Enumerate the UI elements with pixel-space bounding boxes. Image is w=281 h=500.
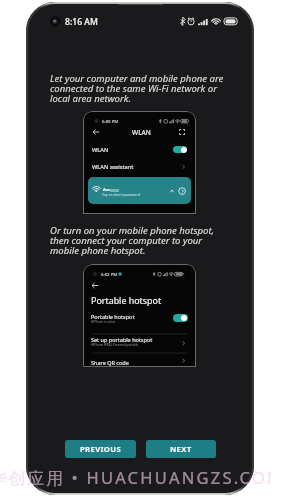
staticText: Set up portable hotspot [91,336,153,343]
staticText: Portable hotspot [91,294,162,306]
staticText: HIPhone is active [91,320,116,324]
staticText: Let your computer and mobile phone are c… [50,72,250,105]
staticText: WLAN [92,146,109,154]
staticText: WLAN assistant [92,163,134,171]
staticText: Share QR code [91,359,129,366]
staticText: WLAN [132,128,151,137]
staticText: 6:00 PM [102,118,119,124]
button[interactable]: Portable hotspot on [173,314,188,322]
staticText: 8:16 AM [65,16,98,28]
staticText: Tap to share password [102,192,140,197]
button[interactable]: PREVIOUS [65,440,136,458]
button[interactable]: WLAN on [173,146,187,153]
staticText: HIPhone WPA2-Personal portable [91,343,139,347]
staticText: Or turn on your mobile phone hotspot, th… [50,224,250,257]
button[interactable]: NEXT [146,440,216,458]
button[interactable]: Anc [88,177,191,204]
staticText: PREVIOUS [80,444,122,454]
staticText: NEXT [170,444,192,454]
staticText: Anc [103,187,111,193]
staticText: 华创应用 • HUACHUANGZS.COM [0,466,271,489]
staticText: 6:02 PM [101,271,118,277]
staticText: Portable hotspot [91,313,135,320]
